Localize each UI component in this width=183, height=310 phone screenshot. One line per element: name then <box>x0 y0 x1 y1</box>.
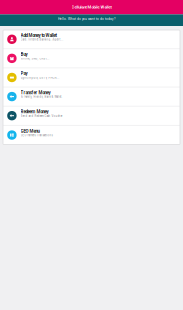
staticText: Airtime, SMS, CRBT... <box>21 57 50 60</box>
staticText: Add Money to Wallet <box>21 33 57 38</box>
button[interactable]: Transfer Money <box>3 87 180 106</box>
staticText: To Family, Friends, Bank & Wallet. <box>21 95 63 98</box>
staticText: Transfer Money <box>21 90 51 95</box>
button[interactable]: GEO Menu <box>3 125 180 145</box>
staticText: GEO Farmers Transactions <box>21 134 53 137</box>
button[interactable]: Redeem Money <box>3 106 180 125</box>
staticText: Hello. What do you want to do today? <box>58 17 116 21</box>
staticText: Card, Internet Banking, Agent... <box>21 38 64 41</box>
staticText: Buy <box>21 52 28 57</box>
staticText: GEO Menu <box>21 129 40 134</box>
staticText: Cellulant Mobile Wallet <box>71 5 111 10</box>
staticText: Redeem Money <box>21 109 49 114</box>
button[interactable]: Buy <box>3 49 180 68</box>
staticText: Agric Inputs, DSTV, PHCN... <box>21 76 60 79</box>
staticText: Pay <box>21 71 28 76</box>
button[interactable]: Pay <box>3 68 180 87</box>
staticText: Send and Redeem Cash Voucher <box>21 114 63 118</box>
button[interactable]: Add Money to Wallet <box>3 30 180 49</box>
